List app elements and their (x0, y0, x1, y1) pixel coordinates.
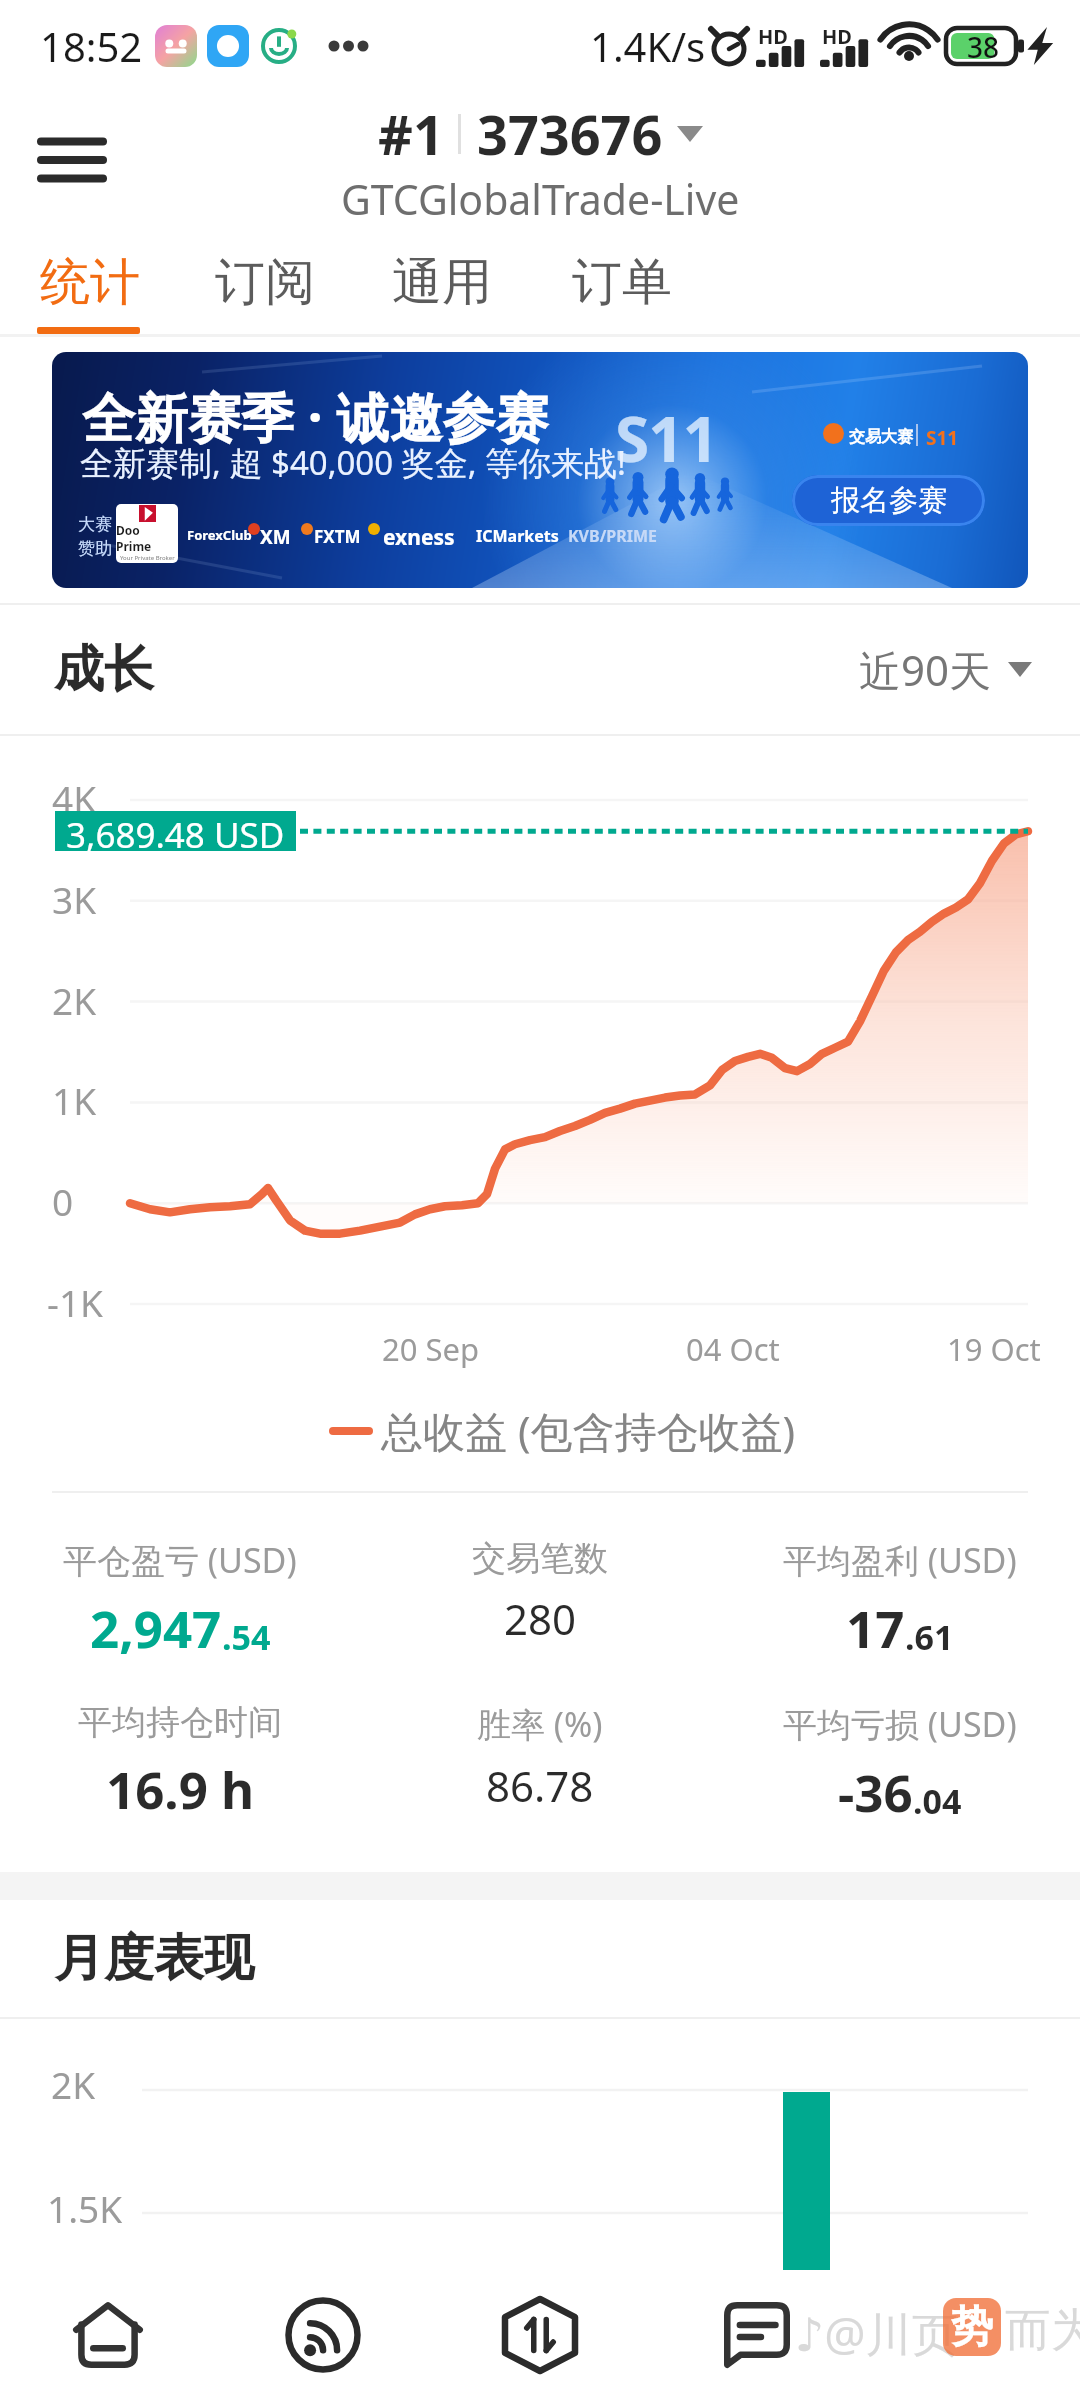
staticText: 订单 (572, 251, 672, 314)
staticText: 大赛 (78, 514, 112, 535)
staticText: Your Private Broker (120, 554, 175, 562)
staticText: 2K (51, 2059, 96, 2109)
staticText: 通用 (392, 251, 492, 314)
staticText: 1.5K (47, 2183, 123, 2233)
staticText: Doo Prime (116, 522, 178, 554)
staticText: 总收益 (包含持仓收益) (381, 1402, 796, 1459)
staticText: 成长 (54, 638, 154, 701)
staticText: 势 (951, 2301, 993, 2354)
staticText: HD (822, 23, 852, 50)
staticText: .04 (913, 1778, 962, 1824)
button[interactable]: 订阅 (203, 243, 327, 341)
staticText: 报名参赛 (831, 482, 947, 519)
staticText: -1K (47, 1277, 103, 1327)
staticText: FXTM (314, 525, 361, 548)
staticText: 1.4K/s (590, 19, 706, 73)
staticText: 280 (504, 1590, 577, 1647)
staticText: 38 (967, 28, 1000, 64)
staticText: 平仓盈亏 (USD) (63, 1537, 297, 1583)
staticText: .54 (222, 1614, 271, 1660)
staticText: 20 Sep (382, 1328, 480, 1370)
button[interactable]: Home (42, 2270, 174, 2400)
staticText: 16.9 h (106, 1754, 255, 1823)
staticText: .61 (905, 1614, 954, 1660)
staticText: 18:52 (40, 19, 143, 73)
staticText: 而为 (1005, 2302, 1080, 2360)
button[interactable]: Trades (474, 2270, 606, 2400)
button[interactable]: Signals (257, 2270, 389, 2400)
staticText: 平均持仓时间 (78, 1701, 282, 1744)
staticText: 全新赛制, 超 $40,000 奖金, 等你来战! (80, 440, 626, 485)
staticText: #1 (378, 97, 444, 171)
staticText: 2K (52, 975, 97, 1025)
staticText: 近90天 (859, 641, 992, 698)
button[interactable]: 报名参赛 (792, 475, 985, 526)
staticText: 交易大赛 (849, 427, 913, 447)
staticText: 胜率 (%) (477, 1701, 603, 1747)
staticText: 月度表现 (54, 1927, 254, 1990)
button[interactable]: 统计 (28, 243, 152, 341)
staticText: -36 (838, 1757, 913, 1826)
staticText: KVB/PRIME (568, 525, 658, 547)
staticText: 全新赛季 · 诚邀参赛 (82, 380, 549, 452)
staticText: 373676 (477, 97, 663, 171)
staticText: 统计 (40, 251, 140, 314)
staticText: ICMarkets (476, 525, 559, 547)
staticText: XM (260, 524, 291, 550)
staticText: 赞助 (78, 538, 112, 559)
button[interactable]: 订单 (560, 243, 684, 341)
staticText: 19 Oct (947, 1328, 1041, 1370)
button[interactable]: Messages (691, 2270, 823, 2400)
staticText: 1K (52, 1075, 97, 1125)
staticText: ForexClub (187, 526, 252, 544)
staticText: GTCGlobalTrade-Live (341, 171, 740, 227)
staticText: 0 (52, 1176, 74, 1226)
staticText: exness (383, 523, 455, 552)
staticText: 平均亏损 (USD) (783, 1701, 1017, 1747)
staticText: 4K (52, 773, 97, 823)
staticText: S11 (926, 425, 959, 451)
staticText: 3K (52, 874, 97, 924)
staticText: 86.78 (486, 1757, 594, 1814)
staticText: 订阅 (215, 251, 315, 314)
button[interactable]: #1 (341, 97, 740, 227)
staticText: 交易笔数 (472, 1537, 608, 1580)
button[interactable]: 通用 (380, 243, 504, 341)
staticText: HD (758, 23, 788, 50)
staticText: ♪@川页 (795, 2302, 958, 2365)
staticText: S11 (615, 396, 718, 480)
staticText: 17 (846, 1593, 905, 1662)
staticText: 3,689.48 USD (66, 811, 285, 851)
button[interactable]: Menu (28, 118, 116, 202)
staticText: 2,947 (90, 1593, 222, 1662)
button[interactable]: 近90天 (859, 641, 1032, 698)
staticText: 平均盈利 (USD) (783, 1537, 1017, 1583)
button[interactable]: S11 (52, 352, 1028, 588)
staticText: 04 Oct (686, 1328, 780, 1370)
